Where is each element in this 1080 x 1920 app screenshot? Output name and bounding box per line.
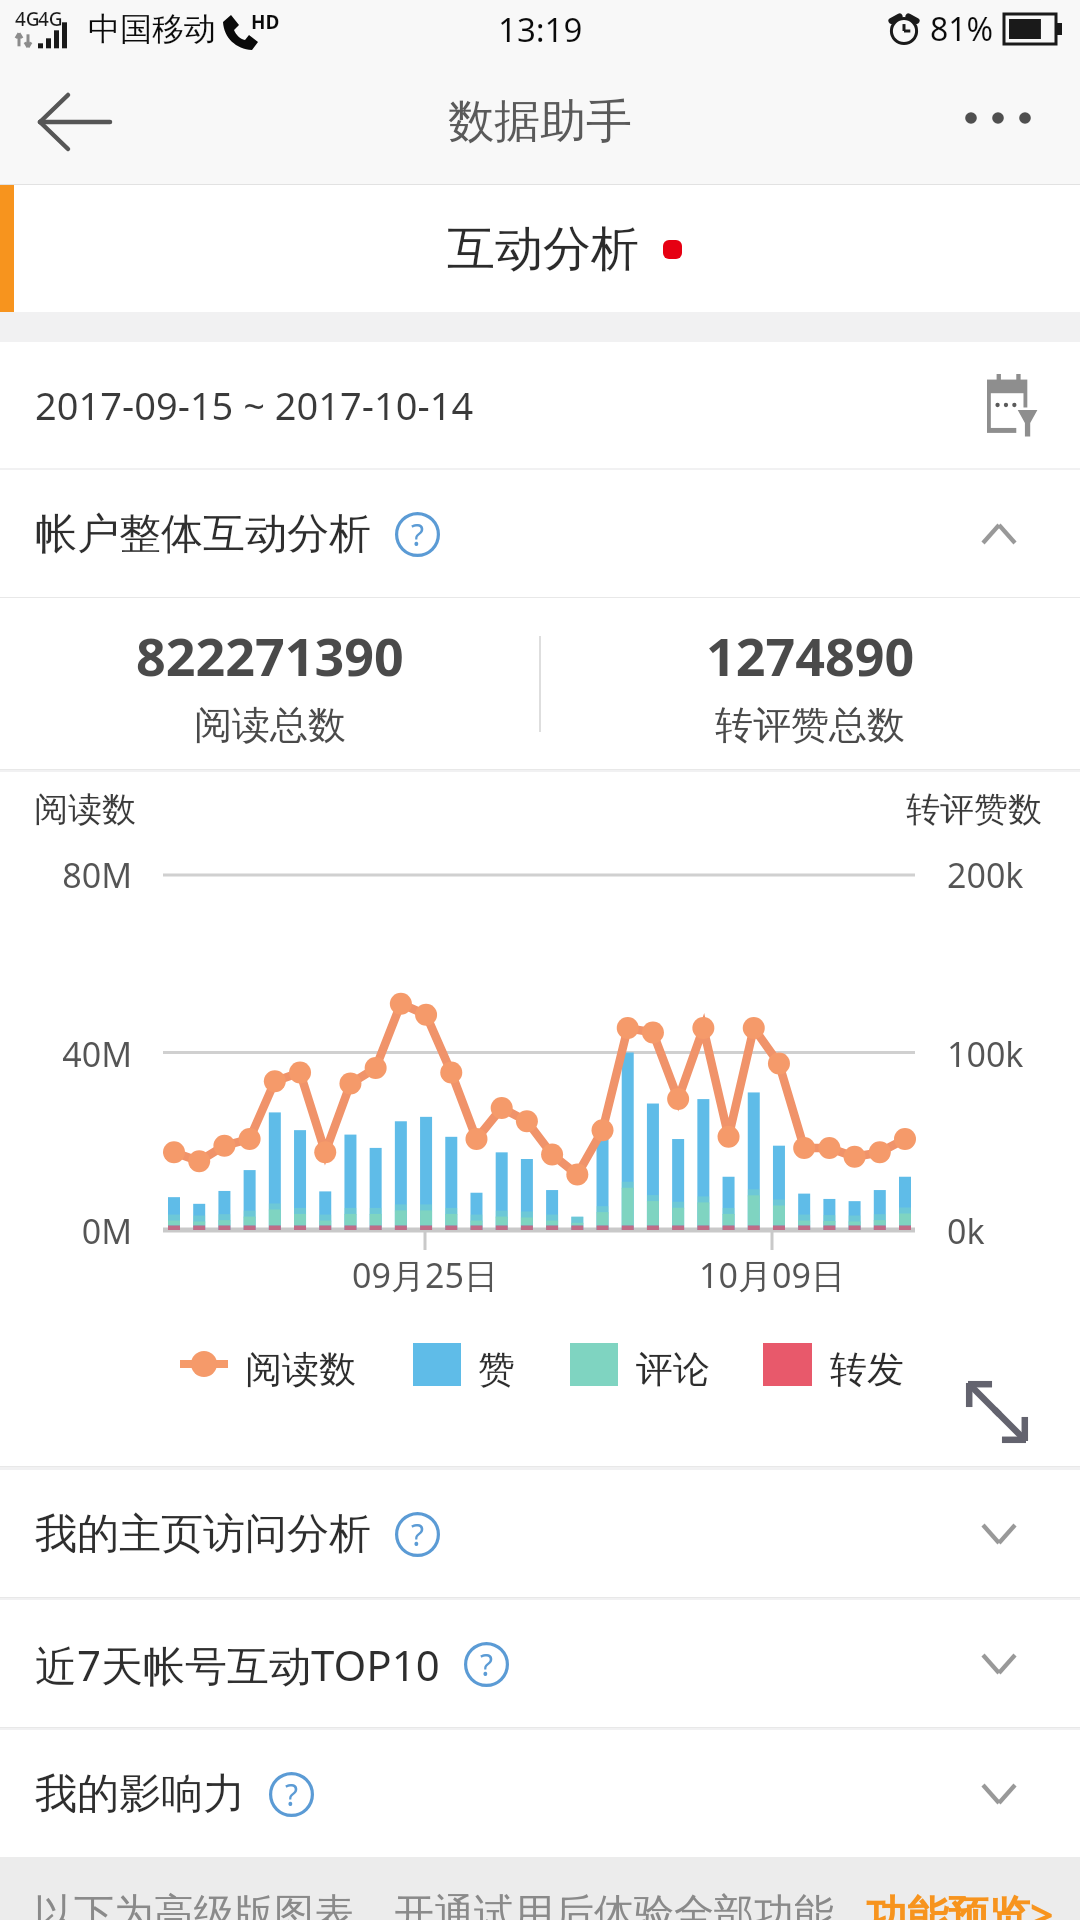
staticText: 阅读数 (34, 788, 136, 831)
staticText: 13:19 (498, 7, 583, 52)
staticText: ? (411, 1514, 425, 1555)
staticText: 80M (20, 852, 132, 898)
button[interactable]: Back (0, 58, 118, 185)
staticText: ? (480, 1644, 494, 1685)
staticText: 我的影响力 (35, 1768, 245, 1821)
staticText: 赞 (478, 1346, 515, 1393)
staticText: 转评赞总数 (715, 701, 905, 749)
button[interactable]: More options (962, 58, 1080, 185)
staticText: 近7天帐号互动TOP10 (35, 1636, 440, 1693)
staticText: 阅读总数 (194, 701, 346, 749)
button[interactable]: 互动分析 (447, 219, 682, 279)
staticText: 1274890 (706, 620, 915, 691)
staticText: 0M (20, 1208, 132, 1254)
staticText: 转发 (830, 1346, 904, 1393)
button[interactable]: 我的影响力 (0, 1730, 1080, 1858)
staticText: 评论 (636, 1346, 710, 1393)
button[interactable]: 2017-09-15 ~ 2017-10-14 (0, 342, 1080, 468)
staticText: 我的主页访问分析 (35, 1508, 371, 1561)
staticText: 822271390 (136, 620, 404, 691)
button[interactable]: 我的主页访问分析 (0, 1470, 1080, 1598)
staticText: 4G (15, 6, 40, 32)
staticText: 帐户整体互动分析 (35, 508, 371, 561)
staticText: 4G (38, 6, 63, 32)
button[interactable] (0, 1857, 1080, 1920)
staticText: HD (251, 9, 280, 35)
staticText: 互动分析 (447, 219, 639, 279)
staticText: ? (411, 514, 425, 555)
staticText: 200k (947, 852, 1024, 898)
button[interactable]: Pick date range (987, 374, 1035, 436)
staticText: 2017-09-15 ~ 2017-10-14 (35, 379, 474, 431)
staticText: 81% (930, 7, 994, 51)
button[interactable]: Expand chart (966, 1381, 1028, 1443)
staticText: 功能预览> (866, 1886, 1054, 1920)
staticText: 阅读数 (245, 1346, 356, 1393)
button[interactable]: 近7天帐号互动TOP10 (0, 1600, 1080, 1728)
staticText: 数据助手 (448, 93, 632, 151)
staticText: 09月25日 (305, 1252, 545, 1298)
staticText: 以下为高级版图表，开通试用后体验全部功能 (34, 1888, 834, 1920)
staticText: 40M (20, 1031, 132, 1077)
staticText: 0k (947, 1208, 985, 1254)
staticText: 转评赞数 (906, 788, 1042, 831)
button[interactable]: 帐户整体互动分析 (0, 470, 1080, 598)
staticText: 100k (947, 1031, 1024, 1077)
staticText: ? (285, 1774, 299, 1815)
staticText: 中国移动 (88, 9, 216, 49)
staticText: 10月09日 (652, 1252, 892, 1298)
